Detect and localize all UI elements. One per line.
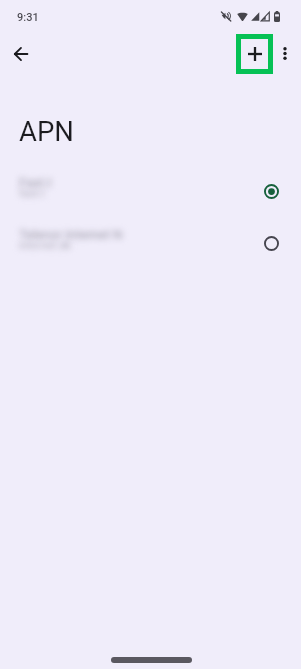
staticText: APN xyxy=(19,115,74,147)
staticText: Telenor Internet N xyxy=(19,227,123,242)
button[interactable]: Telenor Internet N xyxy=(0,220,301,272)
staticText: fast.t xyxy=(19,187,45,200)
staticText: 9:31 xyxy=(17,11,39,24)
button[interactable]: More options xyxy=(271,39,299,67)
button[interactable]: Fast.t xyxy=(0,168,301,220)
staticText: internet.dk xyxy=(19,239,72,252)
button[interactable]: Back xyxy=(3,36,39,72)
button[interactable]: Add APN xyxy=(236,34,273,74)
staticText: Fast.t xyxy=(19,175,52,190)
